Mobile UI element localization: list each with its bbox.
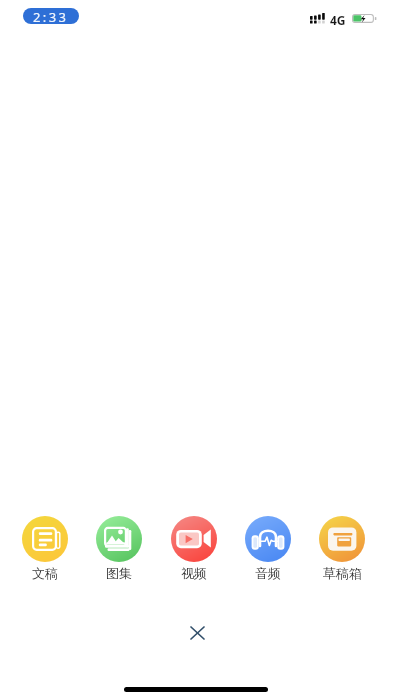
button[interactable]: 音频 [237,516,299,581]
button[interactable]: Close [175,611,219,655]
button[interactable]: 文稿 [14,516,76,581]
staticText: 4G [330,12,346,28]
staticText: 音频 [255,565,281,581]
button[interactable]: 草稿箱 [311,516,373,581]
button[interactable]: 图集 [88,516,150,581]
staticText: 文稿 [32,565,58,581]
staticText: 图集 [106,565,132,581]
button[interactable]: 视频 [163,516,225,581]
staticText: 2:33 [33,8,69,24]
staticText: 草稿箱 [323,565,362,581]
staticText: 视频 [181,565,207,581]
